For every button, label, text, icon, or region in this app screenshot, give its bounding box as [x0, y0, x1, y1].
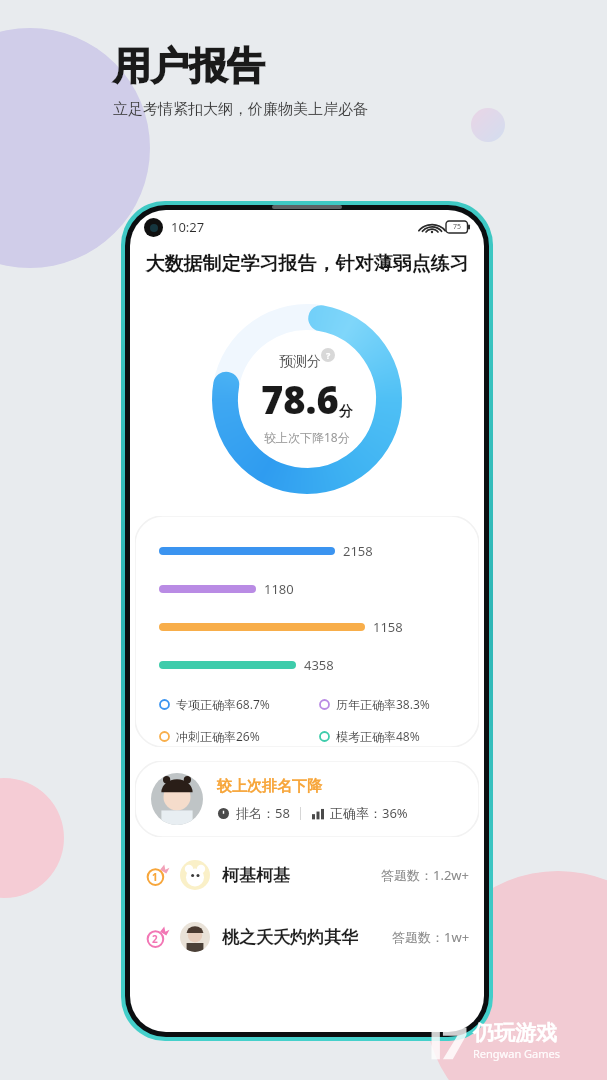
staticText: 答题数：1.2w+ — [381, 866, 470, 884]
staticText: 10:27 — [171, 218, 205, 236]
staticText: Rengwan Games — [473, 1046, 561, 1061]
staticText: 78.6 — [261, 373, 339, 425]
button[interactable]: 2158 — [135, 516, 479, 747]
staticText: 4358 — [304, 656, 334, 674]
button[interactable]: 较上次排名下降 — [135, 761, 479, 837]
staticText: 1158 — [373, 618, 403, 636]
button[interactable]: 2 — [144, 911, 470, 963]
button[interactable]: 专项正确率68.7% — [159, 696, 319, 712]
staticText: 较上次排名下降 — [217, 777, 322, 796]
staticText: 模考正确率48% — [336, 728, 420, 744]
staticText: 桃之夭夭灼灼其华 — [222, 927, 358, 948]
staticText: 专项正确率68.7% — [176, 696, 270, 712]
staticText: 2158 — [343, 542, 373, 560]
staticText: 分 — [339, 403, 353, 421]
staticText: ? — [326, 349, 331, 361]
staticText: 历年正确率38.3% — [336, 696, 430, 712]
staticText: 正确率：36% — [330, 804, 408, 822]
button[interactable]: 模考正确率48% — [319, 728, 420, 744]
staticText: 1180 — [264, 580, 294, 598]
button[interactable]: 历年正确率38.3% — [319, 696, 430, 712]
staticText: 柯基柯基 — [222, 865, 290, 886]
staticText: 用户报告 — [113, 42, 265, 90]
staticText: 立足考情紧扣大纲，价廉物美上岸必备 — [113, 100, 368, 119]
button[interactable]: 冲刺正确率26% — [159, 728, 319, 744]
staticText: 大数据制定学习报告，针对薄弱点练习 — [138, 252, 476, 276]
staticText: 1 — [152, 870, 158, 884]
staticText: 答题数：1w+ — [392, 928, 470, 946]
staticText: 仍玩游戏 — [473, 1020, 557, 1046]
staticText: 2 — [152, 932, 158, 946]
button[interactable]: 说明 — [321, 348, 335, 362]
staticText: 冲刺正确率26% — [176, 728, 260, 744]
staticText: 75 — [453, 222, 462, 232]
button[interactable]: 1 — [144, 849, 470, 901]
staticText: 排名：58 — [236, 804, 290, 822]
staticText: 较上次下降18分 — [264, 429, 350, 445]
staticText: 预测分 — [279, 353, 321, 371]
